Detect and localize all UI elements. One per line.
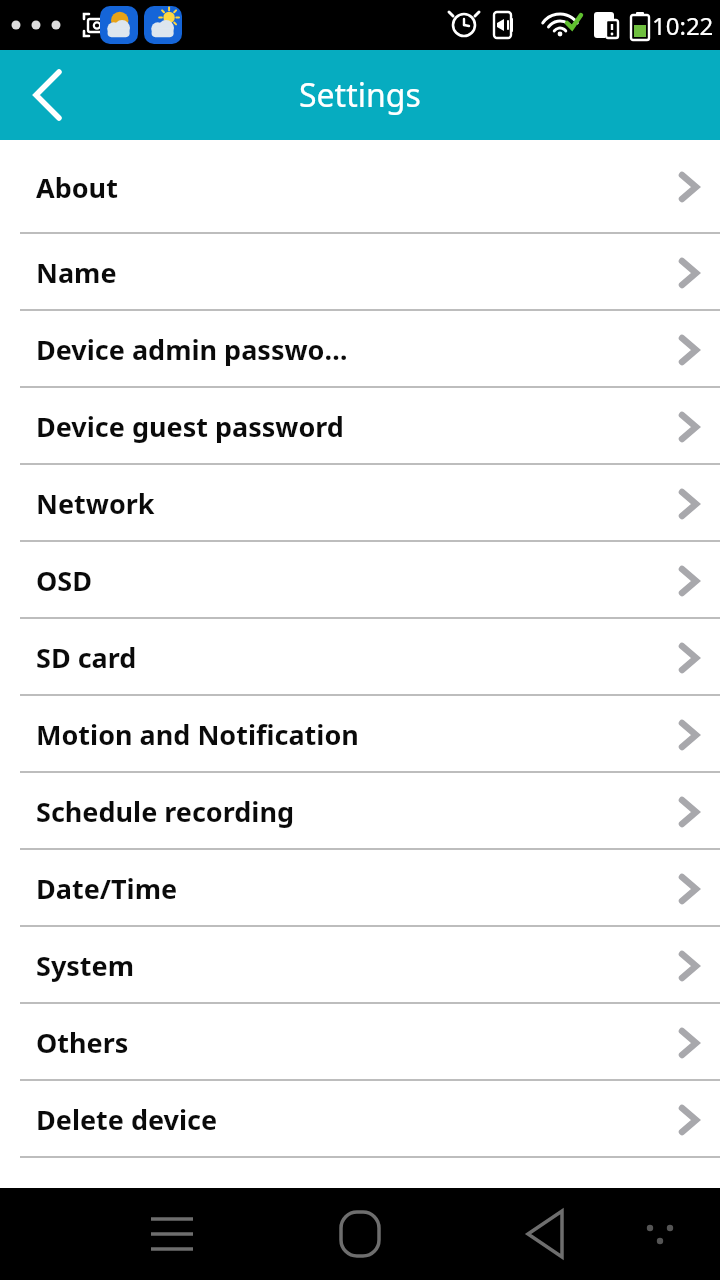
staticText: System <box>36 947 666 984</box>
staticText: About <box>36 169 666 206</box>
button[interactable]: Device guest password <box>0 388 720 465</box>
staticText: Settings <box>299 73 421 117</box>
button[interactable]: More options <box>625 1199 695 1269</box>
button[interactable]: Back <box>508 1194 588 1274</box>
button[interactable]: Date/Time <box>0 850 720 927</box>
staticText: Network <box>36 485 666 522</box>
staticText: 10:22 <box>652 9 714 42</box>
staticText: Motion and Notification <box>36 716 666 753</box>
button[interactable]: Others <box>0 1004 720 1081</box>
staticText: Schedule recording <box>36 793 666 830</box>
button[interactable]: Name <box>0 234 720 311</box>
button[interactable]: Home <box>320 1194 400 1274</box>
button[interactable]: Delete device <box>0 1081 720 1158</box>
button[interactable]: Back <box>0 50 80 140</box>
button[interactable]: Schedule recording <box>0 773 720 850</box>
staticText: Name <box>36 254 666 291</box>
staticText: Device guest password <box>36 408 666 445</box>
button[interactable]: Device admin passwo… <box>0 311 720 388</box>
button[interactable]: SD card <box>0 619 720 696</box>
button[interactable]: System <box>0 927 720 1004</box>
staticText: Others <box>36 1024 666 1061</box>
staticText: Delete device <box>36 1101 666 1138</box>
button[interactable]: Menu <box>132 1194 212 1274</box>
button[interactable]: OSD <box>0 542 720 619</box>
staticText: Device admin passwo… <box>36 331 666 368</box>
staticText: Date/Time <box>36 870 666 907</box>
button[interactable]: About <box>0 140 720 234</box>
staticText: SD card <box>36 639 666 676</box>
button[interactable]: Motion and Notification <box>0 696 720 773</box>
button[interactable]: Network <box>0 465 720 542</box>
staticText: OSD <box>36 562 666 599</box>
